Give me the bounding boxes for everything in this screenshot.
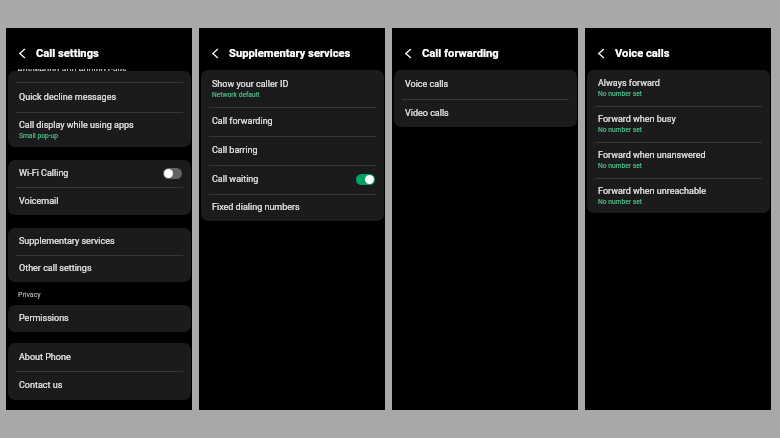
staticText: No number set — [598, 126, 642, 134]
staticText: No number set — [598, 90, 642, 98]
staticText: Forward when unreachable — [598, 186, 706, 197]
staticText: No number set — [598, 162, 642, 170]
button[interactable]: Forward when busy — [587, 106, 770, 142]
button[interactable]: Back — [16, 47, 29, 60]
staticText: Answering and ending calls — [17, 65, 127, 76]
button[interactable]: Show your caller ID — [201, 70, 384, 107]
staticText: Voice calls — [615, 47, 670, 60]
staticText: No number set — [598, 198, 642, 206]
staticText: Quick decline messages — [19, 92, 117, 103]
staticText: Privacy — [18, 291, 41, 299]
staticText: Wi-Fi Calling — [19, 168, 69, 179]
button[interactable]: Permissions — [8, 305, 191, 332]
staticText: Forward when busy — [598, 114, 676, 125]
button[interactable]: Voicemail — [8, 187, 191, 215]
button[interactable]: Supplementary services — [8, 228, 191, 255]
button[interactable]: Always forward — [587, 70, 770, 106]
button[interactable]: Voice calls — [394, 70, 577, 99]
button[interactable]: Fixed dialing numbers — [201, 194, 384, 221]
staticText: Call barring — [212, 145, 258, 156]
button[interactable]: Back — [595, 47, 608, 60]
staticText: Small pop-up — [19, 132, 58, 140]
button[interactable]: Call display while using apps — [8, 112, 191, 147]
button[interactable]: Call forwarding — [201, 107, 384, 136]
staticText: About Phone — [19, 352, 71, 363]
staticText: Contact us — [19, 380, 63, 391]
button[interactable]: Forward when unreachable — [587, 178, 770, 213]
staticText: Video calls — [405, 108, 449, 119]
staticText: Voice calls — [405, 79, 449, 90]
staticText: Voicemail — [19, 196, 59, 207]
button[interactable]: Call waiting — [201, 165, 384, 194]
button[interactable]: Call barring — [201, 136, 384, 165]
button[interactable]: Back — [209, 47, 222, 60]
button[interactable]: Other call settings — [8, 255, 191, 282]
button[interactable]: About Phone — [8, 343, 191, 371]
staticText: Permissions — [19, 313, 69, 324]
button[interactable]: Back — [402, 47, 415, 60]
staticText: Call waiting — [212, 174, 259, 185]
button[interactable]: Turn on — [163, 168, 182, 179]
staticText: Supplementary services — [19, 236, 115, 247]
staticText: Network default — [212, 91, 260, 99]
button[interactable]: Turn off — [356, 174, 375, 185]
button[interactable]: Quick decline messages — [8, 82, 191, 112]
staticText: Call settings — [36, 47, 99, 60]
staticText: Forward when unanswered — [598, 150, 706, 161]
button[interactable]: Video calls — [394, 99, 577, 127]
button[interactable]: Forward when unanswered — [587, 142, 770, 178]
staticText: Show your caller ID — [212, 79, 289, 90]
button[interactable]: Contact us — [8, 371, 191, 399]
staticText: Call display while using apps — [19, 120, 134, 131]
staticText: Call forwarding — [212, 116, 273, 127]
staticText: Call forwarding — [422, 47, 499, 60]
button[interactable]: Wi-Fi Calling — [8, 160, 191, 187]
staticText: Always forward — [598, 78, 660, 89]
staticText: Supplementary services — [229, 47, 351, 60]
staticText: Fixed dialing numbers — [212, 202, 300, 213]
staticText: Other call settings — [19, 263, 92, 274]
